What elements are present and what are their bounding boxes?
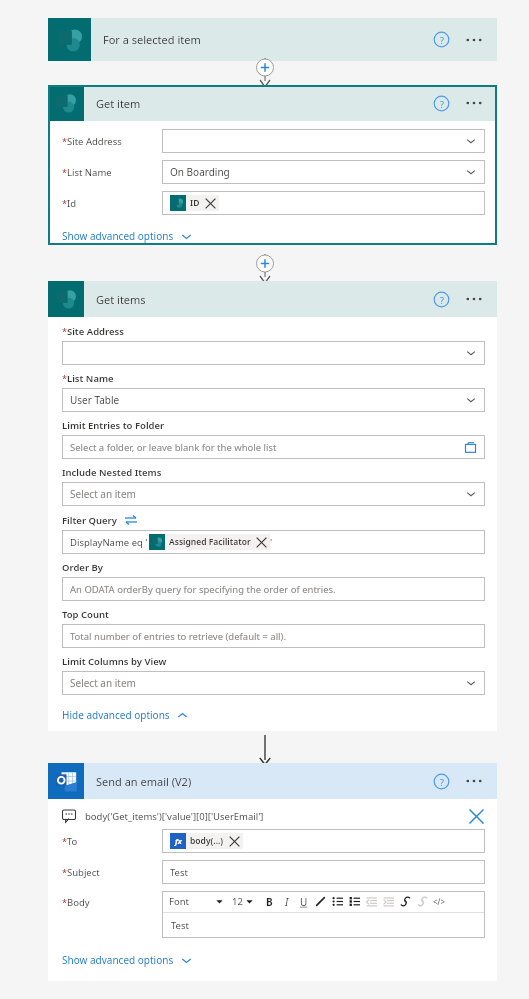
staticText: B: [266, 895, 273, 909]
staticText: Show advanced options: [62, 953, 174, 967]
button[interactable]: Switch to input entire array: [124, 513, 138, 527]
button[interactable]: More commands: [464, 291, 484, 307]
staticText: DisplayName eq ': [70, 536, 148, 549]
button[interactable]: [62, 341, 485, 365]
staticText: Test: [171, 919, 189, 932]
button[interactable]: An ODATA orderBy query for specifying th…: [62, 577, 485, 601]
staticText: Select a folder, or leave blank for the …: [70, 441, 277, 454]
staticText: ?: [440, 34, 444, 46]
staticText: Assigned Facilitator: [169, 536, 251, 548]
button[interactable]: More commands: [464, 32, 484, 48]
staticText: Hide advanced options: [62, 708, 170, 722]
staticText: ?: [440, 776, 444, 788]
staticText: ?: [440, 294, 444, 306]
button[interactable]: Select an item: [62, 671, 485, 695]
staticText: Include Nested Items: [62, 466, 162, 479]
staticText: Filter Query: [62, 514, 117, 527]
staticText: *List Name: [62, 166, 112, 179]
button[interactable]: [162, 129, 485, 153]
other: Browse folders: [462, 439, 478, 455]
button[interactable]: Decrease indent: [363, 892, 380, 911]
button[interactable]: Remove token: [228, 835, 241, 848]
button[interactable]: ID: [162, 191, 485, 215]
staticText: fx: [175, 836, 182, 846]
button[interactable]: Get items: [48, 281, 497, 731]
staticText: ID: [190, 197, 200, 209]
staticText: *To: [62, 835, 78, 848]
button[interactable]: Underline: [295, 892, 312, 911]
button[interactable]: B: [261, 892, 278, 911]
button[interactable]: Increase indent: [380, 892, 397, 911]
button[interactable]: Select an item: [62, 482, 485, 506]
button[interactable]: User Table: [62, 388, 485, 412]
staticText: I: [285, 895, 289, 909]
button[interactable]: Remove token: [255, 536, 268, 549]
staticText: Order By: [62, 561, 103, 574]
button[interactable]: Bulleted list: [329, 892, 346, 911]
staticText: Top Count: [62, 608, 109, 621]
staticText: *Body: [62, 896, 90, 909]
staticText: Show advanced options: [62, 229, 174, 243]
staticText: ': [270, 536, 273, 549]
button[interactable]: Remove token: [204, 197, 217, 210]
staticText: *Site Address: [62, 325, 124, 338]
button[interactable]: Numbered list: [346, 892, 363, 911]
staticText: ?: [440, 98, 444, 110]
button[interactable]: Insert link: [397, 892, 414, 911]
staticText: User Table: [70, 393, 120, 407]
staticText: An ODATA orderBy query for specifying th…: [70, 583, 336, 596]
button[interactable]: For a selected item: [48, 18, 497, 61]
button[interactable]: Select a folder, or leave blank for the …: [62, 435, 485, 459]
button[interactable]: Help: [433, 773, 450, 790]
button[interactable]: Hide advanced options: [62, 708, 188, 722]
button[interactable]: On Boarding: [162, 160, 485, 184]
button[interactable]: Remove link: [414, 892, 431, 911]
staticText: body('Get_items')['value'][0]['UserEmail…: [85, 810, 264, 823]
button[interactable]: Send an email (V2): [48, 763, 497, 981]
button[interactable]: DisplayName eq ': [62, 530, 485, 554]
button[interactable]: Insert a new step: [253, 58, 277, 88]
staticText: *Site Address: [62, 135, 122, 148]
staticText: Select an item: [70, 676, 136, 690]
staticText: On Boarding: [170, 165, 230, 179]
button[interactable]: Help: [433, 95, 450, 112]
button[interactable]: Get item: [48, 85, 497, 245]
staticText: Font: [169, 895, 189, 908]
button[interactable]: Code view: [431, 892, 448, 911]
staticText: </>: [433, 896, 446, 907]
staticText: *List Name: [62, 372, 114, 385]
button[interactable]: More commands: [464, 773, 484, 789]
button[interactable]: Help: [433, 31, 450, 48]
button[interactable]: Italic: [278, 892, 295, 911]
button[interactable]: More commands: [464, 95, 484, 111]
staticText: Total number of entries to retrieve (def…: [70, 630, 286, 643]
staticText: Limit Entries to Folder: [62, 419, 165, 432]
staticText: Get items: [96, 292, 146, 307]
button[interactable]: Dismiss: [467, 807, 485, 825]
button[interactable]: Insert a new step: [253, 254, 277, 284]
button[interactable]: Text color: [312, 892, 329, 911]
button[interactable]: Test: [162, 860, 485, 884]
staticText: Test: [170, 866, 188, 879]
staticText: Get item: [96, 96, 141, 111]
staticText: Select an item: [70, 487, 136, 501]
staticText: Limit Columns by View: [62, 655, 167, 668]
staticText: Send an email (V2): [96, 774, 192, 789]
button[interactable]: Show advanced options: [62, 229, 192, 243]
staticText: *Id: [62, 197, 77, 210]
button[interactable]: Total number of entries to retrieve (def…: [62, 624, 485, 648]
staticText: 12: [232, 895, 243, 908]
button[interactable]: Help: [433, 291, 450, 308]
staticText: For a selected item: [103, 32, 201, 47]
staticText: U: [300, 895, 308, 909]
staticText: *Subject: [62, 866, 100, 879]
staticText: body(...): [190, 835, 224, 847]
button[interactable]: Show advanced options: [62, 953, 192, 967]
button[interactable]: fx: [162, 829, 485, 853]
